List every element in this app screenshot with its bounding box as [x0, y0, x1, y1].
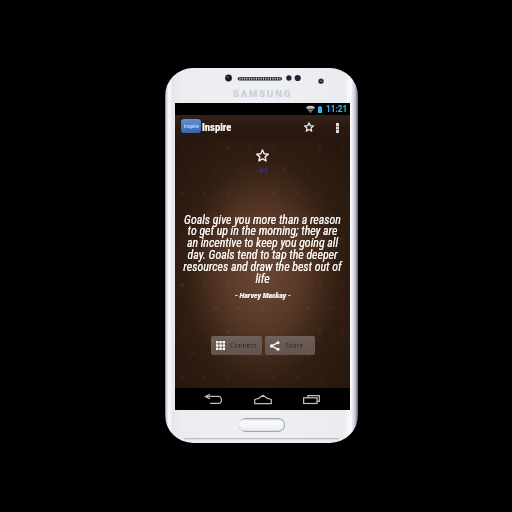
button[interactable]: Inspire app icon: [181, 119, 201, 133]
staticText: - Harvey Mackay -: [235, 291, 291, 300]
button[interactable]: Home: [238, 388, 287, 410]
button[interactable]: Favourites 44: [246, 148, 279, 177]
staticText: inspire: [184, 123, 199, 129]
staticText: SAMSUNG: [233, 88, 293, 99]
button[interactable]: Recent apps: [287, 388, 336, 410]
button[interactable]: Favorite: [298, 116, 320, 138]
button[interactable]: Back: [189, 388, 238, 410]
staticText: 44: [258, 166, 268, 176]
staticText: Connect: [230, 341, 257, 350]
staticText: Goals give you more than a reason to get…: [182, 213, 343, 286]
button[interactable]: Share: [265, 336, 315, 355]
button[interactable]: Connect: [211, 336, 262, 355]
staticText: 11:21: [326, 104, 348, 114]
staticText: Inspire: [202, 121, 232, 133]
staticText: Share: [285, 341, 304, 350]
button[interactable]: More options: [329, 119, 346, 136]
